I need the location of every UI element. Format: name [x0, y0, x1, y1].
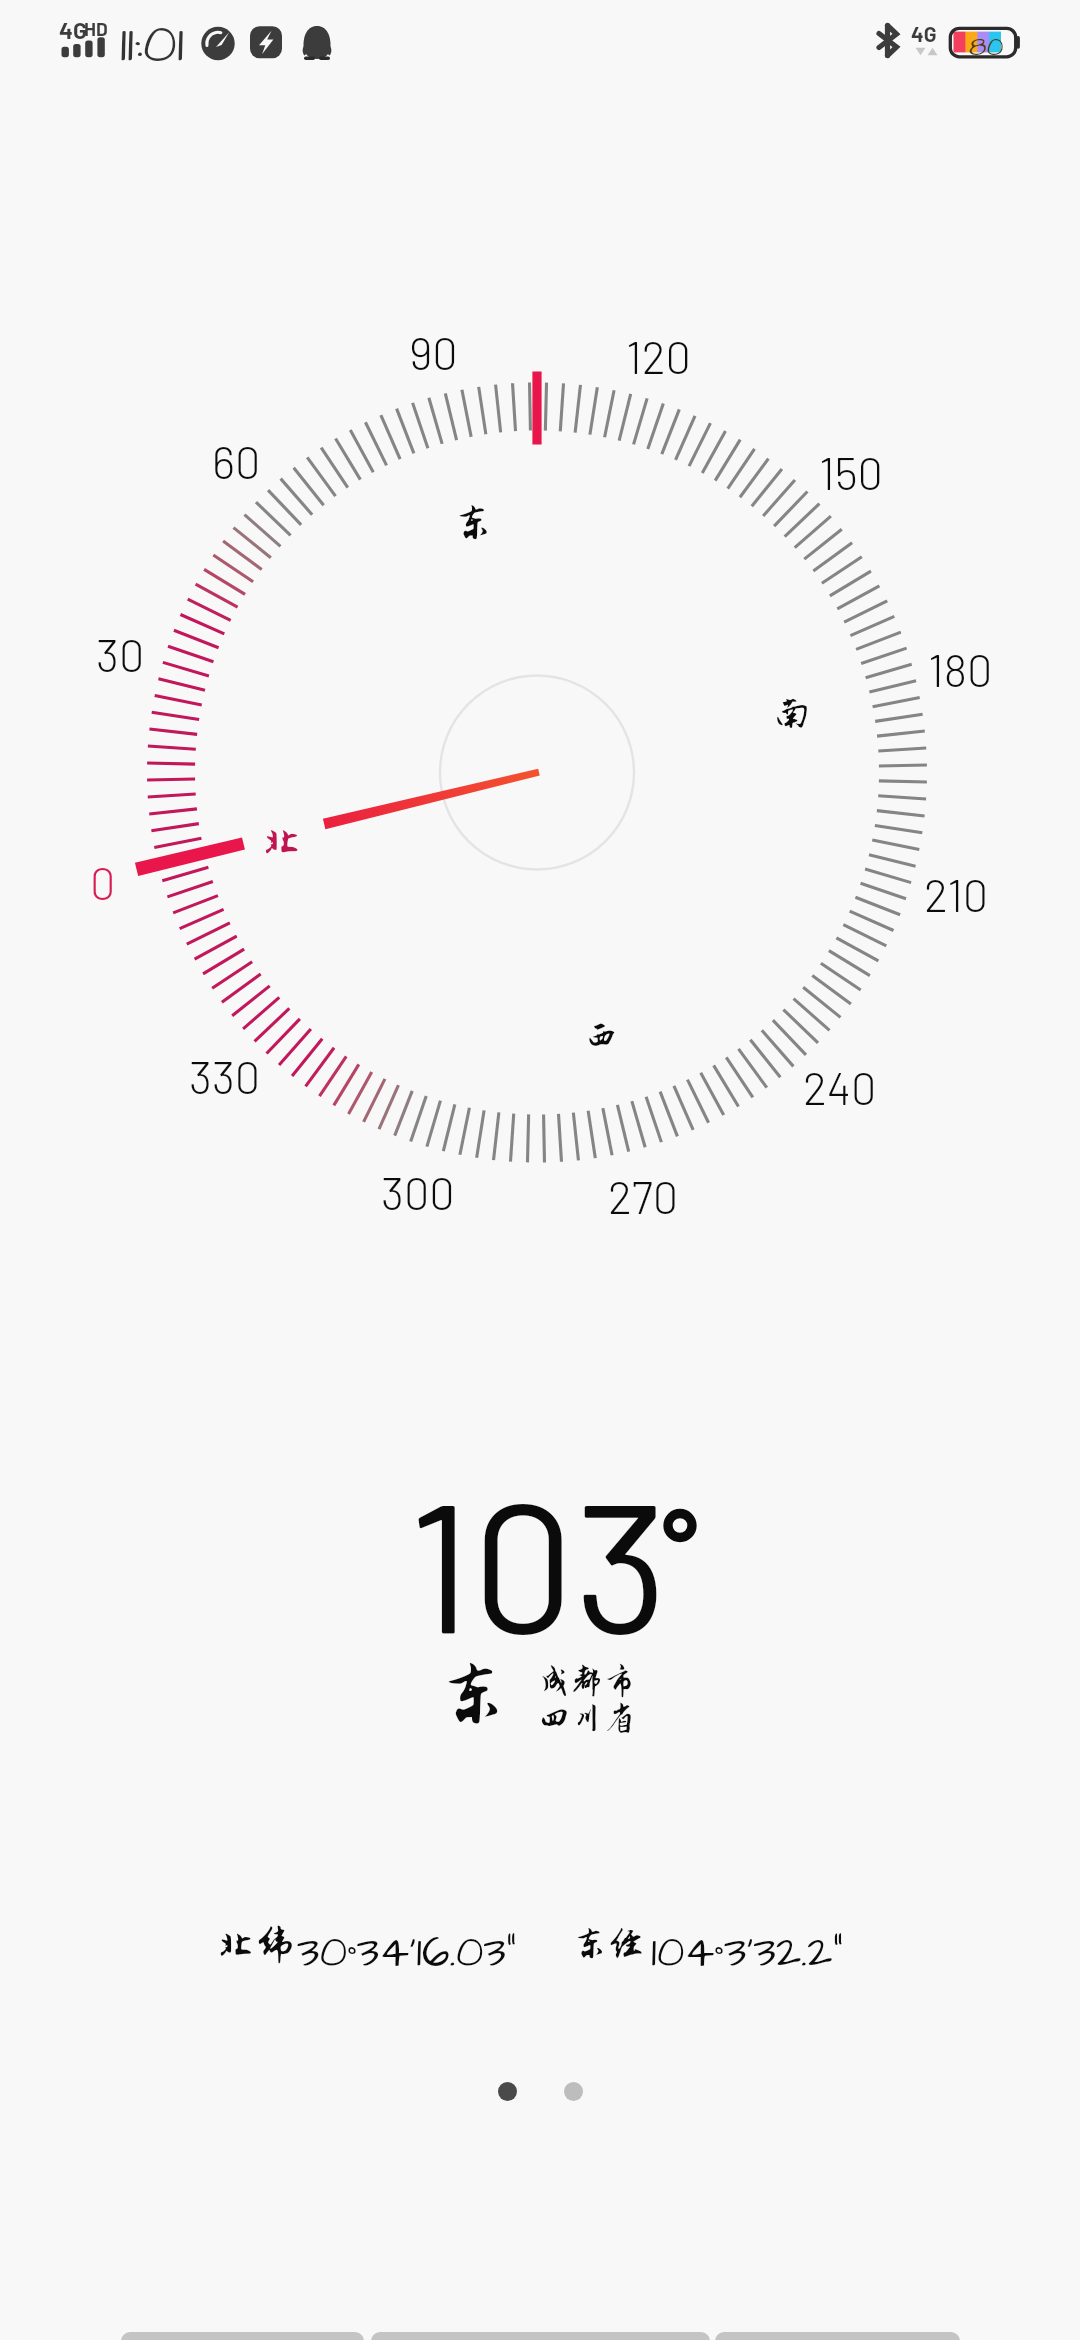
staticText: 成都市 四川省: [538, 1663, 636, 1737]
staticText: 30: [96, 627, 145, 681]
button[interactable]: Recent apps: [715, 2300, 960, 2340]
staticText: 330: [189, 1049, 261, 1103]
button[interactable]: Compass page: [482, 2066, 532, 2116]
staticText: 东: [437, 1655, 509, 1735]
staticText: 150: [819, 445, 883, 499]
staticText: 东: [453, 500, 494, 545]
staticText: 120: [626, 329, 691, 383]
staticText: 210: [924, 867, 989, 921]
button[interactable]: Level page: [548, 2066, 598, 2116]
staticText: 60: [212, 434, 261, 488]
staticText: 东经: [572, 1924, 644, 1964]
staticText: 南: [774, 694, 810, 734]
staticText: 30°34'16.03": [297, 1923, 517, 1984]
staticText: 4G: [911, 21, 937, 46]
staticText: 4G: [59, 16, 87, 44]
staticText: 103: [408, 1451, 669, 1669]
staticText: 104°3'32.2": [651, 1923, 843, 1984]
staticText: 270: [608, 1169, 679, 1223]
staticText: HD: [84, 17, 108, 40]
button[interactable]: Home: [371, 2300, 710, 2340]
staticText: 0: [90, 855, 116, 909]
button[interactable]: Compass dial: [127, 363, 947, 1183]
staticText: 90: [409, 325, 458, 379]
button[interactable]: Back: [121, 2300, 364, 2340]
staticText: 北纬: [216, 1923, 296, 1967]
staticText: 西: [582, 1013, 622, 1057]
staticText: 11:01: [120, 8, 184, 83]
staticText: 80: [969, 28, 1004, 66]
staticText: 240: [803, 1060, 877, 1114]
staticText: 300: [381, 1165, 455, 1219]
staticText: 180: [928, 642, 993, 696]
staticText: 北: [261, 820, 303, 866]
